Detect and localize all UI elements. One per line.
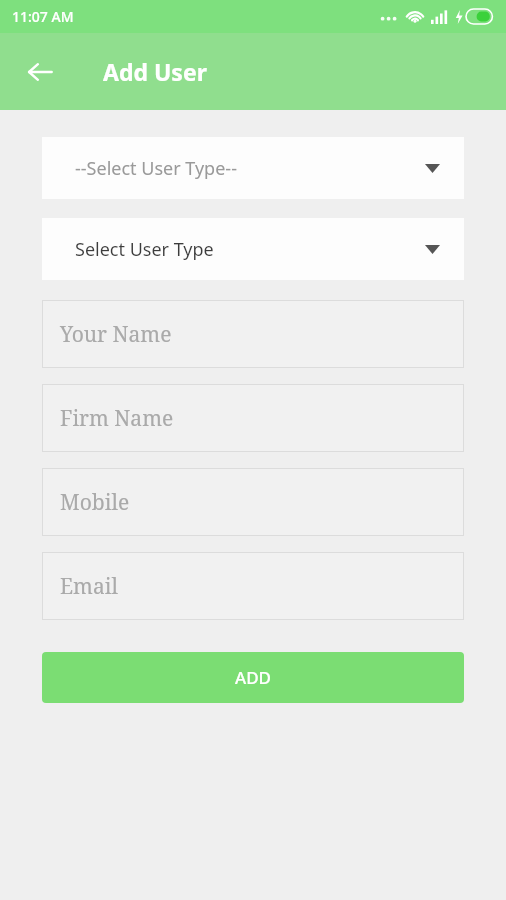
staticText: Email <box>60 572 118 601</box>
staticText: Firm Name <box>60 404 174 433</box>
staticText: Mobile <box>60 488 130 517</box>
button[interactable]: Firm Name <box>42 384 464 452</box>
staticText: Add User <box>103 56 207 87</box>
button[interactable]: Select User Type <box>42 218 464 280</box>
button[interactable]: Mobile <box>42 468 464 536</box>
staticText: Select User Type <box>75 237 214 262</box>
button[interactable]: ADD <box>42 652 464 703</box>
staticText: 11:07 AM <box>12 7 74 26</box>
button[interactable]: Email <box>42 552 464 620</box>
staticText: --Select User Type-- <box>75 156 237 181</box>
staticText: ADD <box>235 666 271 689</box>
staticText: Your Name <box>60 320 172 349</box>
button[interactable]: Your Name <box>42 300 464 368</box>
button[interactable]: --Select User Type-- <box>42 137 464 199</box>
button[interactable]: Back <box>16 48 64 96</box>
